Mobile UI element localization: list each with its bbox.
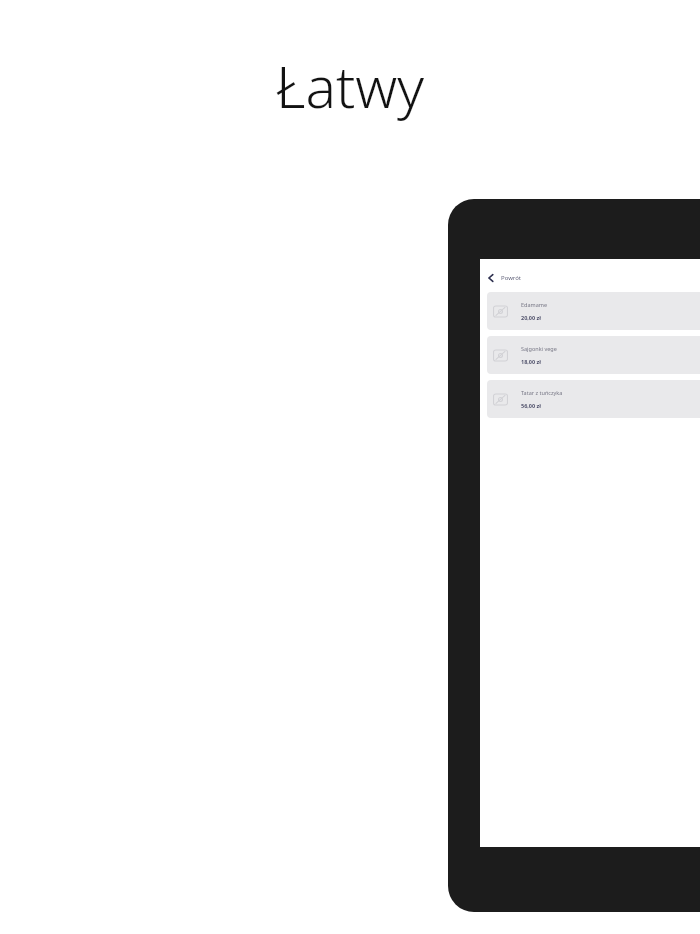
staticText: 56,00 zł: [521, 402, 541, 409]
staticText: 20,00 zł: [521, 314, 541, 321]
staticText: Łatwy: [0, 47, 700, 125]
button[interactable]: Back: [480, 267, 700, 289]
button[interactable]: Tatar z tuńczyka: [487, 380, 700, 418]
staticText: Sajgonki vege: [521, 345, 557, 352]
staticText: Powrót: [501, 274, 522, 282]
button[interactable]: Edamame: [487, 292, 700, 330]
button[interactable]: Sajgonki vege: [487, 336, 700, 374]
other: Back: [486, 273, 496, 283]
staticText: Tatar z tuńczyka: [521, 389, 563, 396]
staticText: 18,00 zł: [521, 358, 541, 365]
staticText: Edamame: [521, 301, 547, 308]
